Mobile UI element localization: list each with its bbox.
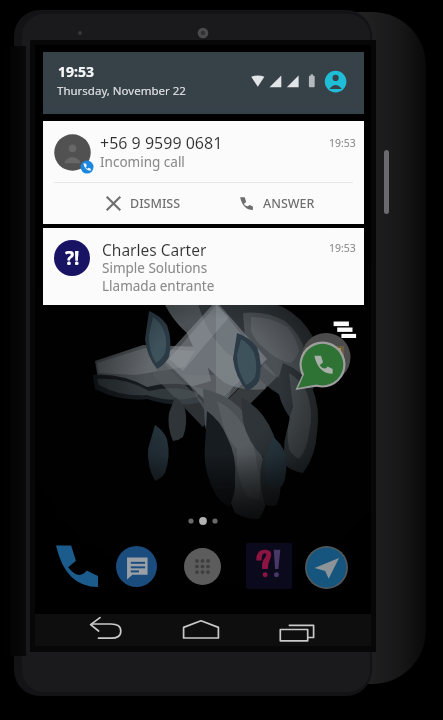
button[interactable]: Simple Solutions [246, 543, 292, 589]
staticText: ANSWER [263, 195, 315, 212]
staticText: 19:53 [58, 62, 94, 81]
other: Caller avatar [52, 132, 93, 173]
button[interactable]: WhatsApp chat bubble [297, 313, 365, 381]
button[interactable]: ANSWER [232, 183, 356, 224]
staticText: Incoming call [100, 153, 185, 171]
staticText: Simple Solutions [102, 259, 208, 277]
staticText: +56 9 9599 0681 [100, 132, 223, 154]
button[interactable]: DISMISS [99, 183, 223, 224]
staticText: Llamada entrante [102, 277, 215, 295]
button[interactable]: Telegram [305, 546, 348, 589]
button[interactable]: ?! [43, 228, 364, 305]
button[interactable]: Home [177, 614, 225, 646]
button[interactable]: All apps [184, 548, 221, 585]
button[interactable]: Back [81, 614, 129, 646]
staticText: 19:53 [329, 241, 356, 255]
button[interactable]: Recents [273, 614, 321, 646]
staticText: 19:53 [329, 136, 356, 150]
staticText: DISMISS [130, 195, 181, 212]
button[interactable]: 19:53 [43, 52, 364, 114]
staticText: ?! [65, 245, 80, 271]
staticText: Charles Carter [102, 239, 207, 260]
staticText: Thursday, November 22 [57, 83, 186, 99]
button[interactable]: Messages [116, 546, 157, 587]
button[interactable]: Phone [56, 545, 98, 587]
